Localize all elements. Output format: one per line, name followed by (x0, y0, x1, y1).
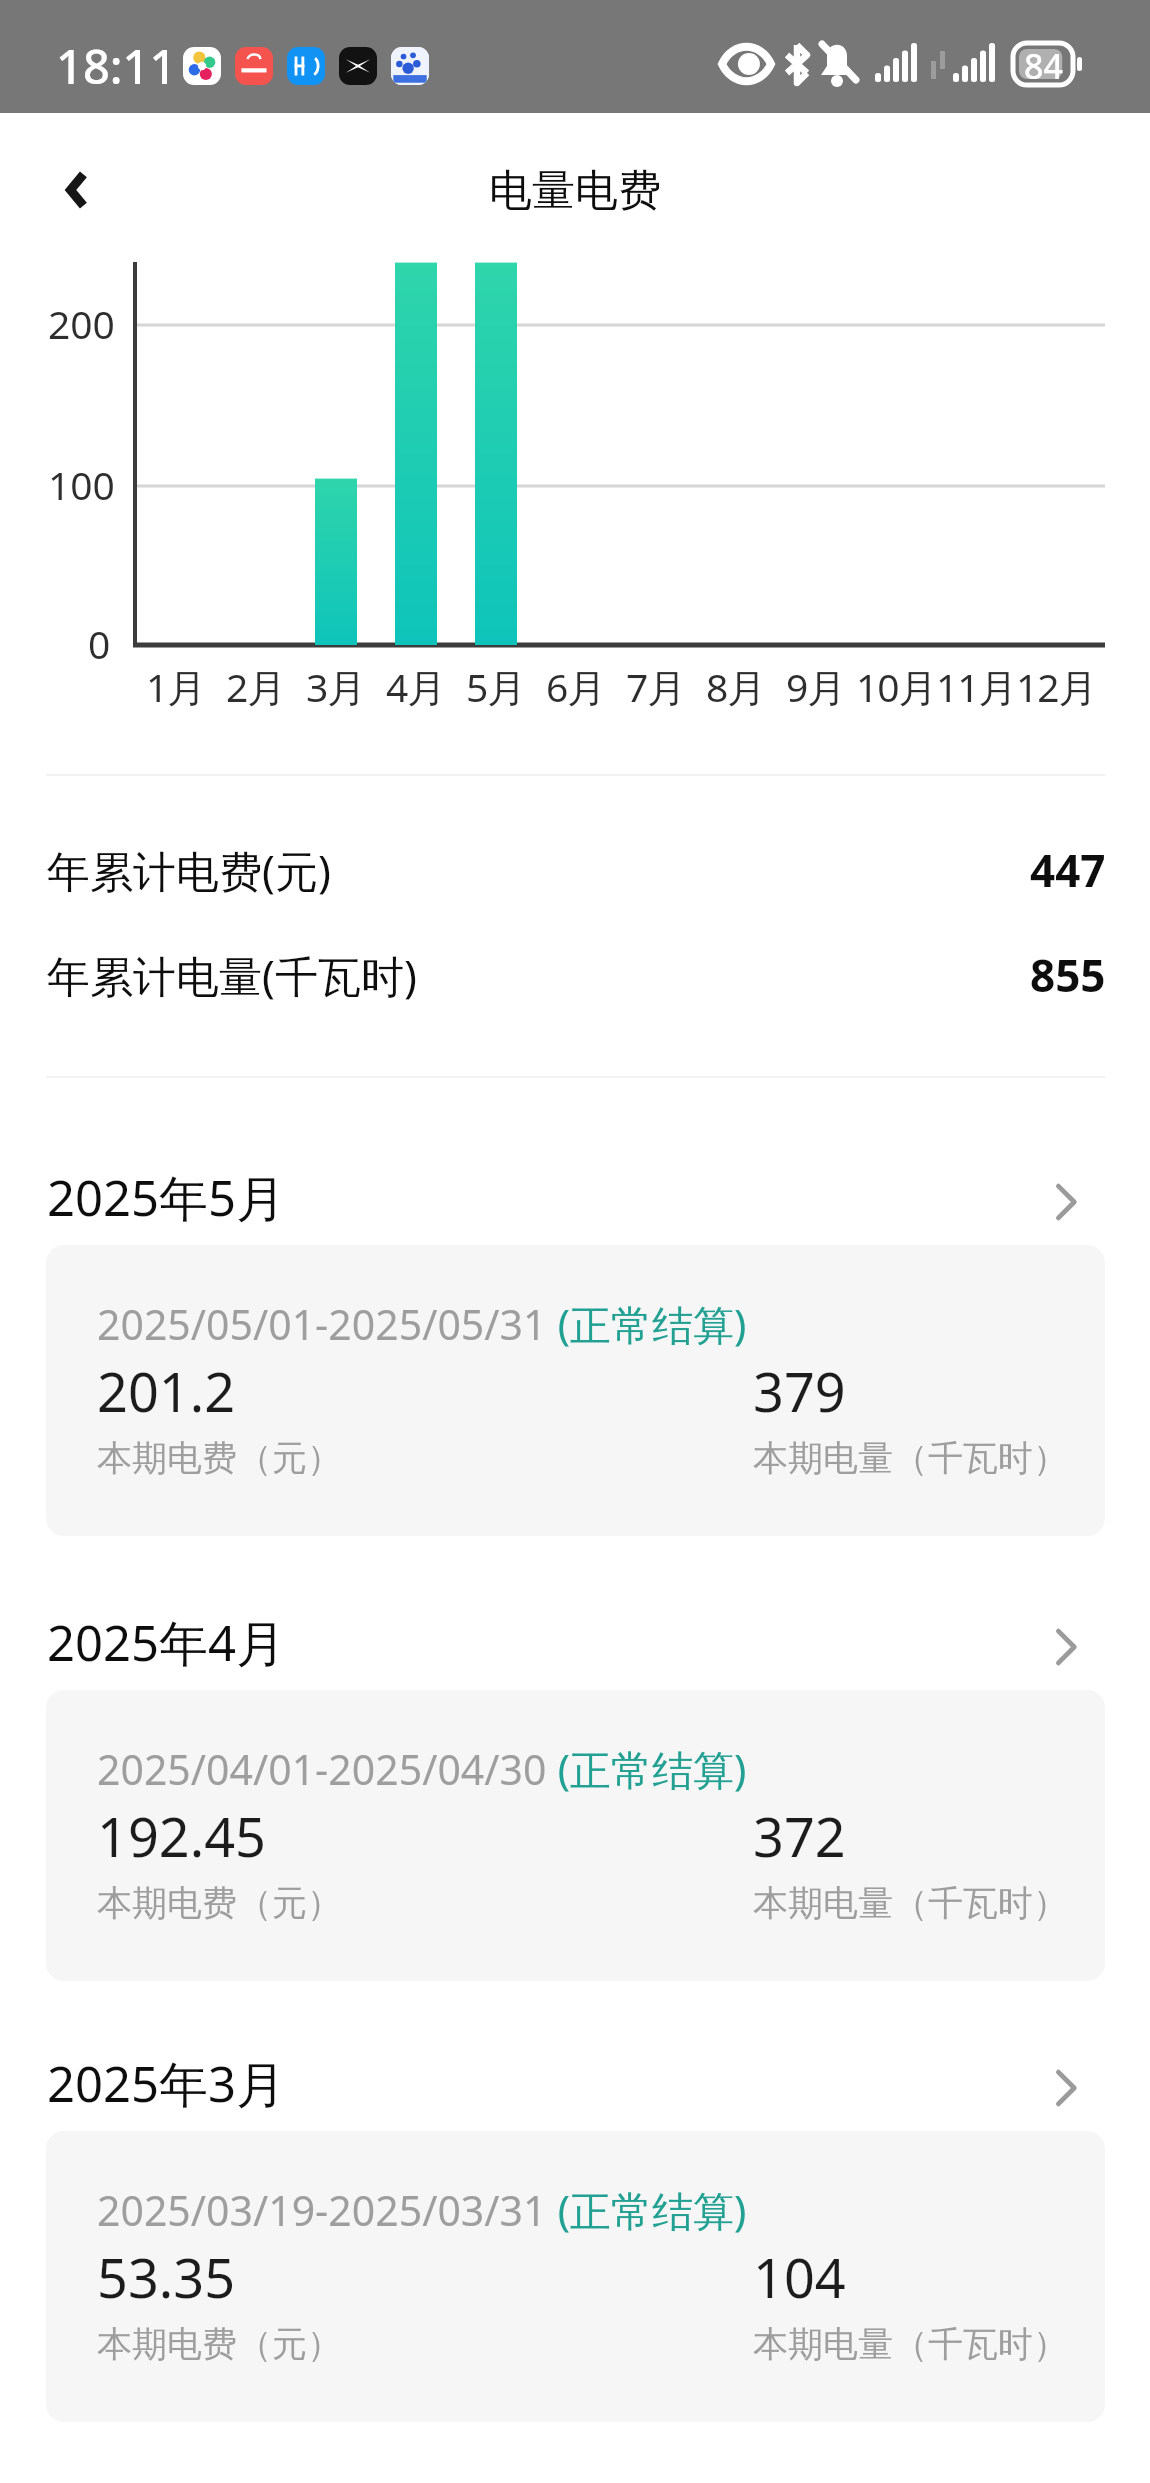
staticText: 年累计电费(元) (47, 841, 331, 900)
button[interactable]: 2025/05/01-2025/05/31 (46, 1245, 1105, 1536)
staticText: 200 (48, 297, 115, 350)
button[interactable]: 2025年3月 (47, 2050, 1106, 2110)
staticText: 12月 (1016, 660, 1097, 713)
staticText: 11月 (936, 660, 1017, 713)
staticText: 2025/04/01-2025/04/30 (97, 1741, 547, 1797)
staticText: 本期电费（元） (97, 1881, 342, 1925)
other: Status icons (710, 0, 1110, 113)
staticText: 本期电费（元） (97, 2322, 342, 2366)
staticText: 855 (1030, 945, 1106, 1005)
staticText: 7月 (626, 660, 686, 713)
staticText: 6月 (546, 660, 606, 713)
staticText: 2025年4月 (47, 1609, 286, 1669)
staticText: 年累计电量(千瓦时) (47, 946, 417, 1005)
button[interactable]: 2025年4月 (47, 1609, 1106, 1669)
staticText: 2月 (226, 660, 286, 713)
staticText: 104 (753, 2240, 846, 2314)
staticText: 本期电量（千瓦时） (753, 1436, 1068, 1480)
staticText: 5月 (466, 660, 526, 713)
button[interactable]: 2025/03/19-2025/03/31 (46, 2131, 1105, 2422)
staticText: 2025年3月 (47, 2050, 286, 2110)
staticText: 8月 (706, 660, 766, 713)
staticText: 本期电量（千瓦时） (753, 2322, 1068, 2366)
staticText: 4月 (386, 660, 446, 713)
staticText: 447 (1030, 840, 1106, 900)
staticText: 192.45 (97, 1799, 266, 1873)
button[interactable]: Back (32, 147, 118, 233)
staticText: 201.2 (97, 1354, 236, 1428)
staticText: (正常结算) (547, 1296, 747, 1352)
staticText: 本期电量（千瓦时） (753, 1881, 1068, 1925)
staticText: 3月 (306, 660, 366, 713)
staticText: 电量电费 (489, 164, 661, 218)
staticText: (正常结算) (547, 2182, 747, 2238)
staticText: 本期电费（元） (97, 1436, 342, 1480)
staticText: 84 (1024, 43, 1063, 89)
staticText: 9月 (786, 660, 846, 713)
staticText: 2025年5月 (47, 1164, 286, 1224)
button[interactable]: 2025年5月 (47, 1164, 1106, 1224)
staticText: 18:11 (56, 34, 177, 98)
staticText: 2025/05/01-2025/05/31 (97, 1296, 547, 1352)
staticText: 372 (753, 1799, 846, 1873)
staticText: 379 (753, 1354, 846, 1428)
staticText: 2025/03/19-2025/03/31 (97, 2182, 547, 2238)
staticText: (正常结算) (547, 1741, 747, 1797)
button[interactable]: 2025/04/01-2025/04/30 (46, 1690, 1105, 1981)
staticText: 100 (48, 458, 115, 511)
staticText: 53.35 (97, 2240, 236, 2314)
staticText: 1月 (146, 660, 206, 713)
staticText: 10月 (856, 660, 937, 713)
staticText: 0 (88, 617, 111, 670)
